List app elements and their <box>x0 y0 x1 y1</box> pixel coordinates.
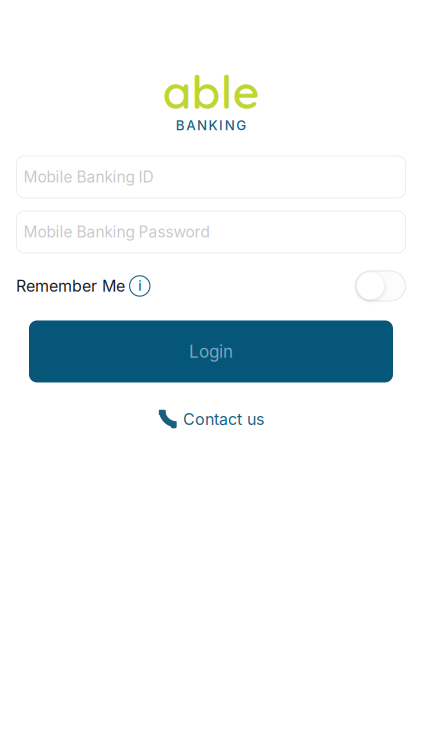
staticText: Contact us <box>183 409 264 429</box>
button[interactable]: Remember Me <box>355 270 406 301</box>
button[interactable]: Login <box>29 320 393 382</box>
staticText: Mobile Banking ID <box>23 168 153 186</box>
staticText: BANKING <box>176 117 246 133</box>
staticText: Remember Me <box>16 276 125 296</box>
staticText: i <box>138 278 141 294</box>
button[interactable]: Contact us <box>158 409 264 429</box>
staticText: Login <box>189 341 233 362</box>
staticText: able <box>162 62 259 120</box>
staticText: Mobile Banking Password <box>23 223 209 241</box>
button[interactable]: Remember Me <box>16 275 150 297</box>
